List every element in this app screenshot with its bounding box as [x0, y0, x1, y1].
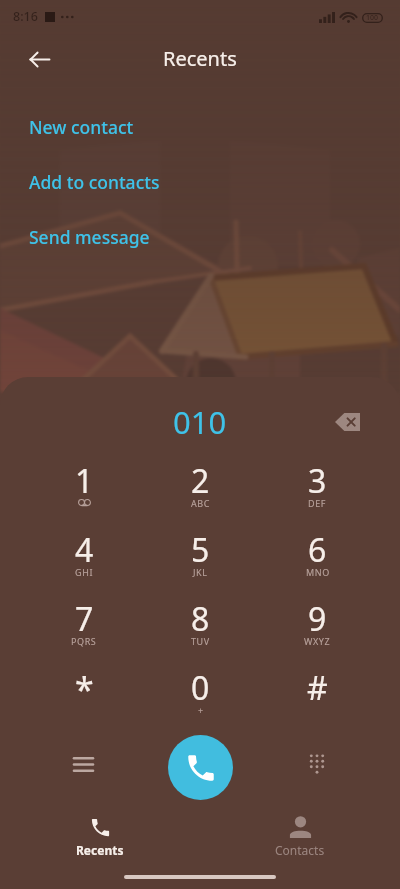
button[interactable]: New contact — [29, 99, 400, 154]
staticText: 5 — [191, 528, 210, 572]
button[interactable]: # — [259, 675, 376, 744]
staticText: TUV — [191, 635, 210, 647]
staticText: Recents — [163, 45, 237, 72]
staticText: Contacts — [275, 842, 325, 858]
button[interactable]: Hide dialpad — [296, 743, 338, 785]
button[interactable]: * — [26, 675, 142, 744]
staticText: GHI — [75, 566, 94, 578]
staticText: 3 — [308, 459, 327, 503]
staticText: 8:16 — [13, 8, 38, 25]
button[interactable]: Recents — [0, 795, 200, 865]
staticText: JKL — [193, 566, 208, 578]
staticText: Recents — [76, 842, 124, 858]
button[interactable]: 6 — [259, 537, 376, 606]
staticText: New contact — [29, 115, 134, 139]
staticText: 010 — [173, 401, 227, 443]
staticText: ABC — [191, 497, 211, 509]
staticText: * — [75, 666, 94, 712]
button[interactable]: Add to contacts — [29, 154, 400, 209]
button[interactable]: More options — [62, 743, 104, 785]
staticText: Send message — [29, 225, 150, 249]
staticText: 1 — [75, 459, 94, 503]
button[interactable]: Call — [168, 735, 233, 800]
staticText: 2 — [191, 459, 210, 503]
staticText: 6 — [308, 528, 327, 572]
button[interactable]: 5 — [142, 537, 259, 606]
staticText: 8 — [191, 597, 210, 641]
staticText: 0 — [191, 666, 210, 710]
staticText: Add to contacts — [29, 170, 160, 194]
staticText: 9 — [308, 597, 327, 641]
button[interactable]: Backspace — [327, 402, 367, 442]
button[interactable]: 1 — [26, 468, 142, 537]
button[interactable]: 9 — [259, 606, 376, 675]
staticText: # — [307, 666, 328, 710]
button[interactable]: 0 — [142, 675, 259, 744]
staticText: + — [198, 704, 204, 716]
button[interactable]: 7 — [26, 606, 142, 675]
staticText: MNO — [306, 566, 330, 578]
button[interactable]: 2 — [142, 468, 259, 537]
button[interactable]: Back — [18, 38, 60, 80]
staticText: 7 — [75, 597, 94, 641]
staticText: 100 — [366, 13, 379, 23]
staticText: 4 — [75, 528, 94, 572]
button[interactable]: Contacts — [200, 795, 400, 865]
staticText: WXYZ — [304, 635, 331, 647]
button[interactable]: 3 — [259, 468, 376, 537]
button[interactable]: Send message — [29, 209, 400, 264]
button[interactable]: 8 — [142, 606, 259, 675]
staticText: DEF — [308, 497, 327, 509]
staticText: PQRS — [71, 635, 97, 647]
button[interactable]: 4 — [26, 537, 142, 606]
